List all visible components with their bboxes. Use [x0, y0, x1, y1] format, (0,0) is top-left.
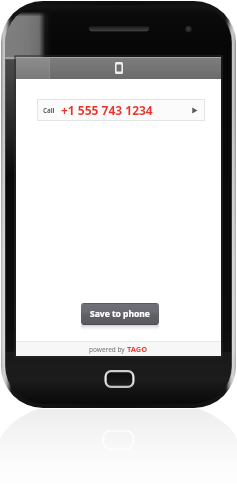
staticText: Save to phone	[90, 308, 150, 320]
button[interactable]: Save to phone	[81, 303, 159, 325]
staticText: powered by	[89, 345, 127, 354]
button[interactable]: Call	[37, 99, 205, 121]
staticText: TAGO	[127, 344, 148, 354]
staticText: Call	[43, 106, 55, 114]
staticText: +1 555 743 1234	[61, 102, 153, 118]
other: Open	[190, 106, 199, 115]
